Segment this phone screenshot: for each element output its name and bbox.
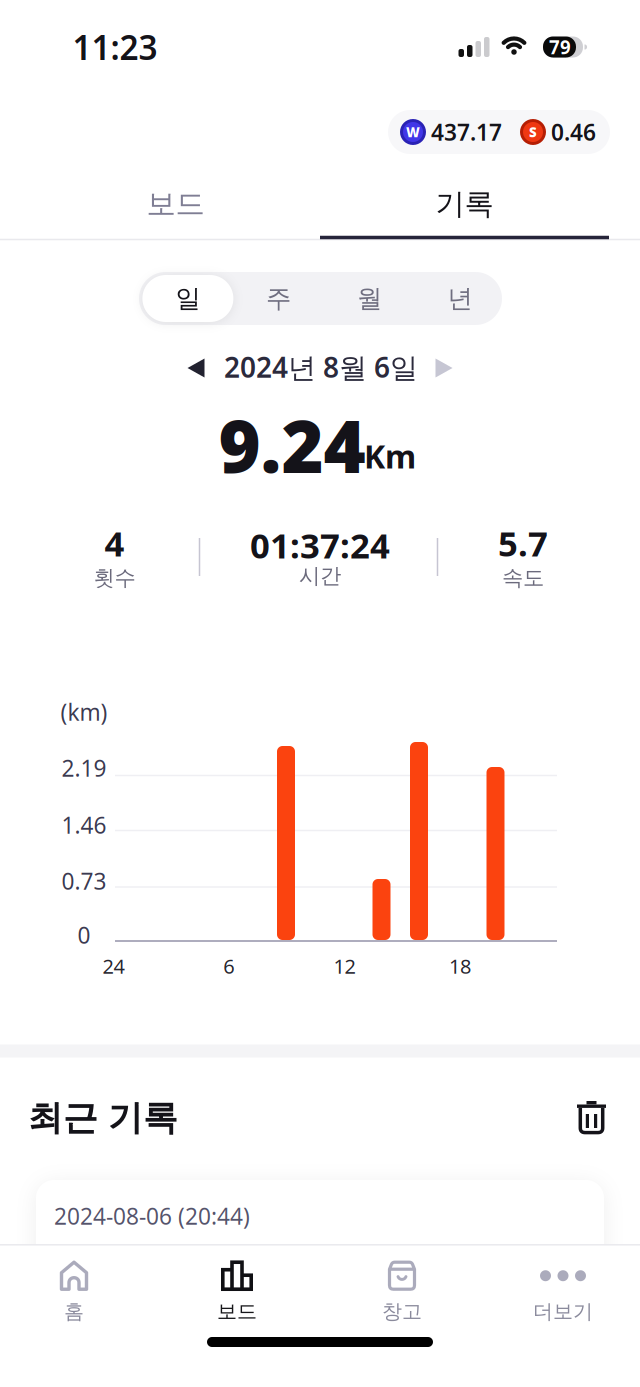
staticText: 일: [175, 283, 200, 314]
staticText: 11:23: [72, 25, 157, 69]
staticText: 홈: [64, 1299, 84, 1324]
staticText: 속도: [502, 565, 544, 591]
staticText: 79: [549, 35, 571, 59]
button[interactable]: Next day: [435, 358, 452, 377]
staticText: 주: [266, 283, 291, 314]
staticText: 437.17: [431, 117, 502, 147]
staticText: 2024년 8월 6일: [224, 348, 418, 386]
staticText: 12: [333, 953, 355, 979]
button[interactable]: 년: [415, 272, 505, 325]
staticText: 횟수: [93, 565, 135, 591]
staticText: 기록: [435, 186, 493, 222]
button[interactable]: 보드: [31, 174, 320, 234]
button[interactable]: 주: [234, 272, 324, 325]
staticText: 최근 기록: [28, 1097, 178, 1139]
staticText: 5.7: [498, 520, 548, 566]
staticText: 01:37:24: [250, 522, 390, 568]
staticText: 년: [448, 283, 473, 314]
staticText: 2024-08-06 (20:44): [54, 1201, 250, 1231]
button[interactable]: 일: [143, 272, 233, 325]
staticText: 4: [104, 520, 124, 566]
staticText: 0: [77, 920, 90, 950]
staticText: 월: [357, 283, 382, 314]
staticText: 보드: [217, 1299, 257, 1324]
staticText: 24: [102, 953, 124, 979]
staticText: 9.24: [218, 397, 365, 493]
staticText: W: [406, 123, 420, 141]
button[interactable]: 기록: [320, 174, 609, 234]
button[interactable]: 창고: [337, 1253, 467, 1331]
staticText: 보드: [146, 186, 204, 222]
staticText: 2.19: [61, 753, 106, 783]
button[interactable]: W: [388, 110, 610, 154]
button[interactable]: 더보기: [498, 1253, 628, 1331]
staticText: S: [529, 123, 537, 141]
button[interactable]: 홈: [9, 1253, 139, 1331]
staticText: 0.73: [61, 866, 106, 896]
staticText: 시간: [299, 563, 341, 589]
staticText: 더보기: [533, 1299, 593, 1324]
staticText: 0.46: [551, 117, 596, 147]
button[interactable]: 2024-08-06 (20:44): [36, 1180, 604, 1290]
staticText: 6: [223, 953, 234, 979]
button[interactable]: 보드: [172, 1253, 302, 1331]
staticText: 창고: [382, 1299, 422, 1324]
button[interactable]: Delete records: [577, 1101, 606, 1135]
button[interactable]: 월: [324, 272, 414, 325]
staticText: Km: [364, 435, 416, 477]
button[interactable]: Previous day: [187, 358, 204, 377]
staticText: (km): [60, 697, 107, 727]
staticText: 1.46: [61, 810, 106, 840]
staticText: 18: [449, 953, 471, 979]
